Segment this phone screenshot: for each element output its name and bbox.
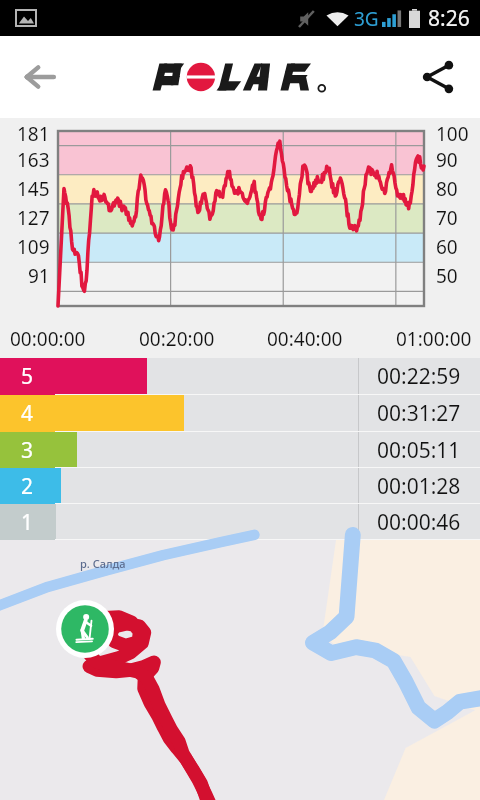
button[interactable]: 1 bbox=[0, 504, 480, 540]
button[interactable]: Route map bbox=[0, 540, 480, 800]
staticText: 60 bbox=[436, 234, 458, 260]
staticText: 1 bbox=[21, 508, 34, 537]
staticText: 3 bbox=[21, 436, 34, 465]
staticText: 00:01:28 bbox=[377, 472, 461, 501]
staticText: 00:00:00 bbox=[10, 326, 86, 352]
staticText: 01:00:00 bbox=[396, 326, 472, 352]
button[interactable]: Back bbox=[10, 47, 70, 107]
staticText: 00:05:11 bbox=[377, 436, 461, 465]
button[interactable]: Start location bbox=[56, 600, 114, 658]
staticText: 100 bbox=[436, 121, 469, 144]
button[interactable]: 4 bbox=[0, 395, 480, 432]
staticText: 181 bbox=[17, 121, 50, 144]
staticText: 80 bbox=[436, 176, 458, 202]
button[interactable]: 2 bbox=[0, 468, 480, 504]
staticText: 5 bbox=[21, 362, 34, 391]
staticText: 00:00:46 bbox=[377, 508, 461, 537]
button[interactable]: 5 bbox=[0, 358, 480, 395]
button[interactable]: 3 bbox=[0, 432, 480, 468]
staticText: 00:22:59 bbox=[377, 362, 461, 391]
button[interactable]: Share bbox=[408, 47, 468, 107]
staticText: 50 bbox=[436, 263, 458, 289]
staticText: 2 bbox=[21, 472, 34, 501]
staticText: 3G bbox=[354, 6, 379, 32]
staticText: 00:40:00 bbox=[267, 326, 343, 352]
staticText: 4 bbox=[21, 399, 34, 428]
staticText: 163 bbox=[17, 147, 50, 173]
staticText: 00:20:00 bbox=[139, 326, 215, 352]
staticText: 127 bbox=[17, 205, 50, 231]
staticText: 70 bbox=[436, 205, 458, 231]
staticText: 145 bbox=[17, 176, 50, 202]
staticText: р. Салда bbox=[80, 556, 126, 571]
staticText: 91 bbox=[28, 263, 50, 289]
staticText: 00:31:27 bbox=[377, 399, 461, 428]
staticText: 109 bbox=[17, 234, 50, 260]
staticText: 90 bbox=[436, 147, 458, 173]
staticText: 8:26 bbox=[428, 4, 470, 33]
